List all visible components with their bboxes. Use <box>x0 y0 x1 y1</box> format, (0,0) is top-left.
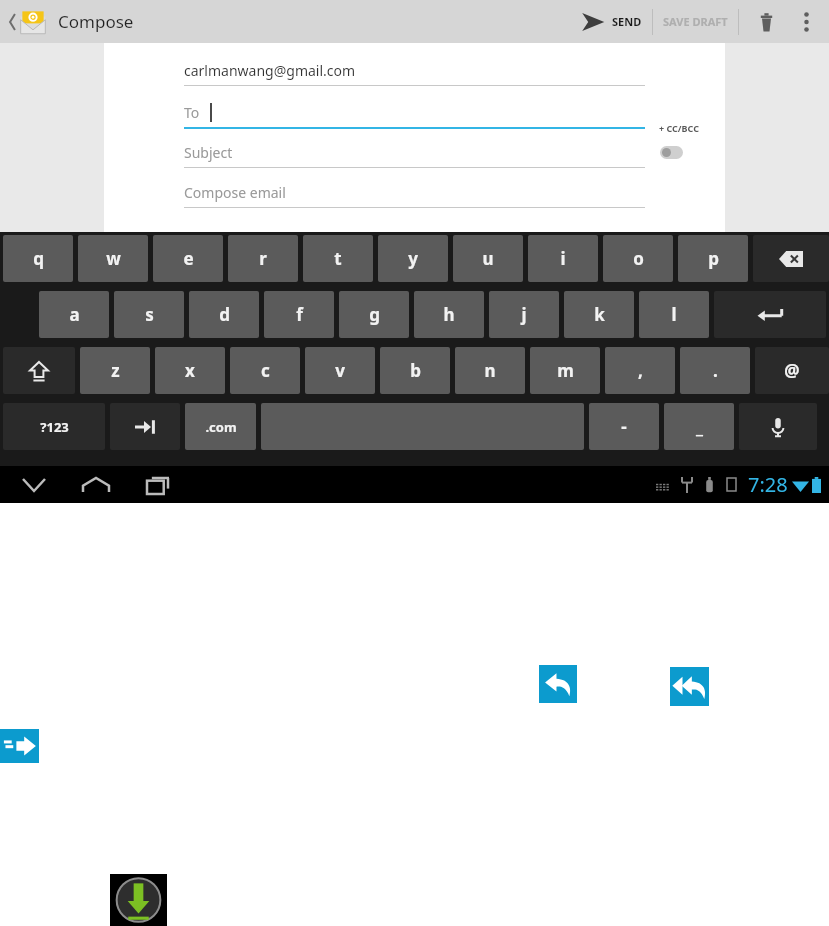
button[interactable]: d <box>189 291 259 338</box>
staticText: .com <box>205 418 237 436</box>
button[interactable]: s <box>114 291 184 338</box>
button[interactable]: w <box>78 235 148 282</box>
button[interactable]: r <box>228 235 298 282</box>
button[interactable]: Recent apps <box>136 466 180 503</box>
button[interactable]: o <box>603 235 673 282</box>
button[interactable]: i <box>528 235 598 282</box>
button[interactable]: Voice input <box>739 403 817 450</box>
staticText: 7:28 <box>748 471 788 498</box>
button[interactable]: Tab <box>110 403 180 450</box>
button[interactable]: e <box>153 235 223 282</box>
staticText: SAVE DRAFT <box>663 14 728 29</box>
staticText: - <box>621 415 627 438</box>
button[interactable]: ?123 <box>3 403 105 450</box>
button[interactable]: f <box>264 291 334 338</box>
button[interactable]: j <box>489 291 559 338</box>
button[interactable]: c <box>230 347 300 394</box>
button[interactable]: l <box>639 291 709 338</box>
button[interactable]: Compose email <box>104 176 725 209</box>
staticText: + CC/BCC <box>659 122 699 134</box>
staticText: h <box>443 303 455 326</box>
staticText: w <box>106 247 121 270</box>
button[interactable]: More options <box>793 0 819 43</box>
button[interactable]: To <box>104 96 725 129</box>
button[interactable]: h <box>414 291 484 338</box>
button[interactable]: Up <box>6 0 50 43</box>
button[interactable]: , <box>605 347 675 394</box>
button[interactable] <box>660 146 683 159</box>
button[interactable]: a <box>39 291 109 338</box>
button[interactable]: g <box>339 291 409 338</box>
staticText: , <box>638 359 643 382</box>
button[interactable]: z <box>80 347 150 394</box>
staticText: l <box>671 303 677 326</box>
button[interactable]: Reply <box>539 665 577 703</box>
button[interactable]: Forward <box>0 729 39 763</box>
staticText: j <box>521 303 527 326</box>
button[interactable]: carlmanwang@gmail.com <box>104 54 725 87</box>
button[interactable]: Reply all <box>670 667 709 706</box>
button[interactable]: Back <box>12 466 56 503</box>
button[interactable]: Enter <box>714 291 826 338</box>
staticText: @ <box>784 359 800 382</box>
staticText: x <box>185 359 195 382</box>
button[interactable]: k <box>564 291 634 338</box>
staticText: e <box>183 247 194 270</box>
button[interactable]: Discard <box>751 0 781 43</box>
button[interactable]: Home <box>74 466 118 503</box>
staticText: carlmanwang@gmail.com <box>184 61 356 80</box>
staticText: v <box>335 359 345 382</box>
staticText: t <box>334 247 342 270</box>
staticText: q <box>33 247 44 270</box>
button[interactable]: y <box>378 235 448 282</box>
staticText: Compose <box>58 10 134 33</box>
button[interactable]: q <box>3 235 73 282</box>
staticText: _ <box>696 415 703 438</box>
staticText: b <box>410 359 421 382</box>
staticText: s <box>145 303 154 326</box>
staticText: f <box>296 303 303 326</box>
button[interactable]: b <box>380 347 450 394</box>
button[interactable]: x <box>155 347 225 394</box>
staticText: m <box>557 359 574 382</box>
staticText: k <box>594 303 605 326</box>
staticText: i <box>560 247 566 270</box>
staticText: u <box>482 247 494 270</box>
button[interactable]: v <box>305 347 375 394</box>
staticText: a <box>69 303 80 326</box>
staticText: c <box>261 359 270 382</box>
button[interactable]: u <box>453 235 523 282</box>
button[interactable]: Backspace <box>753 235 829 282</box>
staticText: ?123 <box>40 418 69 436</box>
staticText: r <box>259 247 267 270</box>
staticText: SEND <box>612 14 642 29</box>
button[interactable]: SEND <box>581 0 642 43</box>
staticText: . <box>713 359 718 382</box>
button[interactable]: @ <box>755 347 829 394</box>
button[interactable]: t <box>303 235 373 282</box>
staticText: z <box>111 359 120 382</box>
staticText: To <box>184 103 200 122</box>
staticText: y <box>408 247 418 270</box>
button[interactable]: SAVE DRAFT <box>663 0 728 43</box>
staticText: Subject <box>184 143 233 162</box>
button[interactable]: Download <box>110 874 167 926</box>
staticText: d <box>219 303 230 326</box>
button[interactable]: _ <box>664 403 734 450</box>
button[interactable]: . <box>680 347 750 394</box>
staticText: n <box>484 359 496 382</box>
button[interactable]: - <box>589 403 659 450</box>
button[interactable]: .com <box>185 403 256 450</box>
staticText: g <box>369 303 380 326</box>
staticText: o <box>633 247 644 270</box>
staticText: p <box>708 247 719 270</box>
button[interactable]: n <box>455 347 525 394</box>
button[interactable]: m <box>530 347 600 394</box>
button[interactable]: Subject <box>104 136 725 169</box>
button[interactable]: p <box>678 235 748 282</box>
button[interactable]: Shift <box>3 347 75 394</box>
staticText: Compose email <box>184 183 286 202</box>
